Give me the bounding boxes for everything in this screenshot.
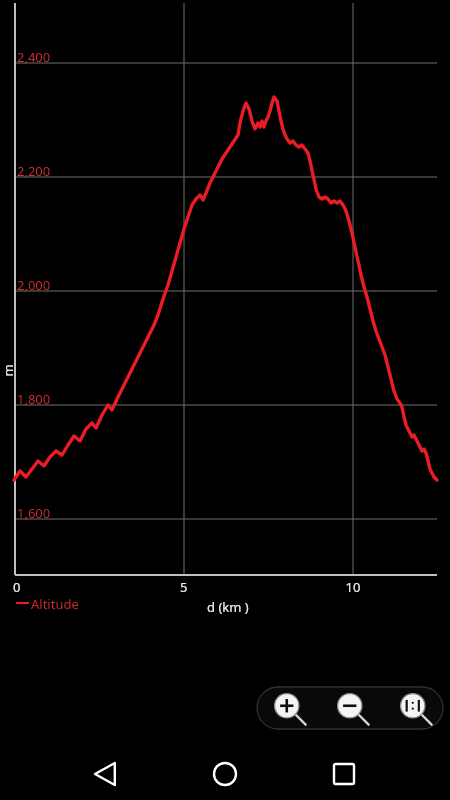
button[interactable]: Back [82,750,130,798]
button[interactable]: Zoom in [273,692,305,724]
button[interactable]: Home [201,750,249,798]
button[interactable]: Reset zoom [399,692,431,724]
button[interactable]: Zoom out [336,692,368,724]
button[interactable]: Recent apps [320,750,368,798]
